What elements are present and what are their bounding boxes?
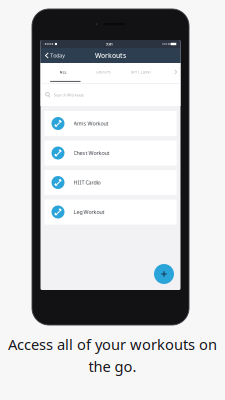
button[interactable]: Today — [40, 48, 71, 63]
staticText: Arms Workout — [73, 120, 108, 127]
staticText: 9:41 — [106, 41, 113, 47]
button[interactable]: MY CLIENT — [120, 63, 161, 81]
staticText: Today — [50, 52, 65, 59]
button[interactable]: More tabs — [171, 69, 180, 74]
button[interactable]: Search Workouts — [40, 84, 180, 106]
button[interactable]: Chest Workout — [44, 140, 176, 165]
staticText: ALL — [59, 69, 66, 75]
staticText: Access all of your workouts on — [8, 334, 217, 354]
button[interactable]: Arms Workout — [44, 111, 176, 136]
staticText: Search Workouts — [54, 92, 84, 98]
staticText: Leg Workout — [73, 208, 104, 216]
staticText: Workouts — [95, 51, 126, 60]
staticText: GROUPS — [95, 69, 110, 75]
staticText: MY CLIENT — [131, 69, 151, 75]
staticText: 100% — [161, 42, 169, 46]
staticText: the go. — [88, 356, 136, 376]
staticText: Chest Workout — [73, 149, 109, 157]
button[interactable]: Add workout — [154, 264, 180, 290]
button[interactable]: HIIT Cardio — [44, 170, 176, 195]
button[interactable]: ALL — [40, 63, 85, 81]
button[interactable]: Leg Workout — [44, 199, 176, 224]
staticText: HIIT Cardio — [73, 179, 100, 186]
button[interactable]: GROUPS — [85, 63, 120, 81]
